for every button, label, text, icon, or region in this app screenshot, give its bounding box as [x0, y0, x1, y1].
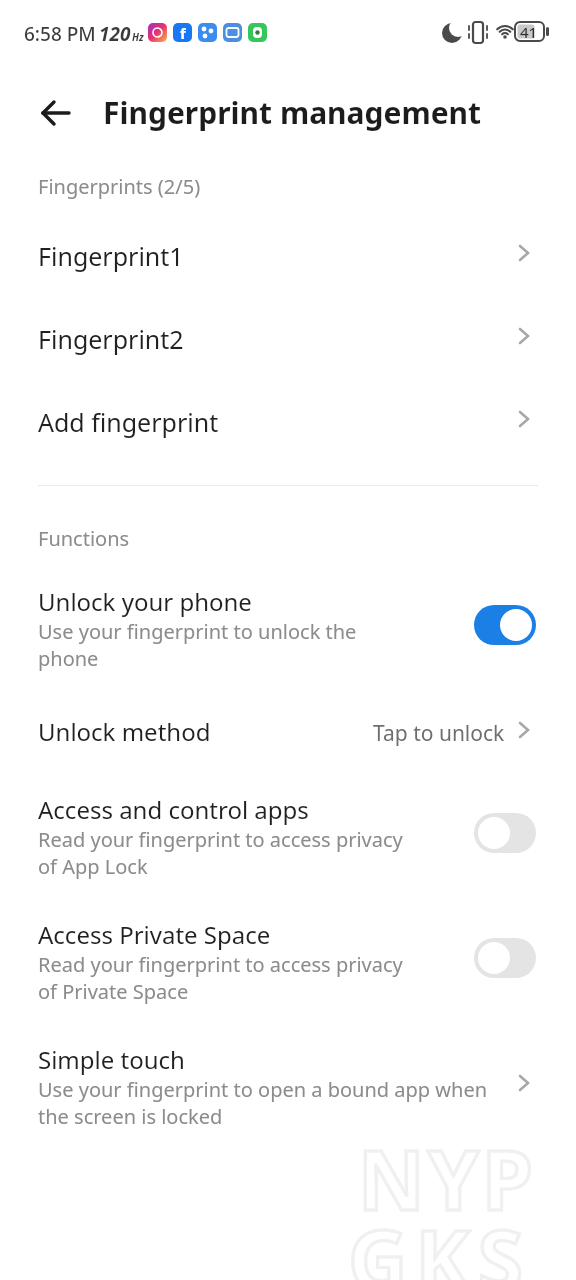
staticText: Fingerprint2	[38, 322, 184, 356]
staticText: Use your fingerprint to open a bound app…	[38, 1076, 488, 1130]
button[interactable]	[474, 605, 536, 645]
staticText: Add fingerprint	[38, 405, 219, 439]
staticText: 6:58 PM	[24, 21, 96, 47]
staticText: Tap to unlock	[373, 719, 505, 748]
button[interactable]: Fingerprint2	[0, 296, 576, 376]
button[interactable]: Access and control apps	[0, 778, 576, 893]
staticText: Hz	[132, 30, 144, 44]
staticText: Unlock your phone	[38, 585, 252, 618]
staticText: Fingerprints (2/5)	[38, 173, 201, 200]
staticText: Read your fingerprint to access privacy …	[38, 826, 403, 880]
staticText: Fingerprint1	[38, 239, 184, 273]
staticText: Fingerprint management	[103, 92, 482, 133]
staticText: NYP	[358, 1122, 536, 1234]
button[interactable]	[474, 938, 536, 978]
staticText: GKS	[348, 1202, 531, 1280]
staticText: Simple touch	[38, 1043, 185, 1076]
staticText: f	[180, 23, 186, 42]
button[interactable]: Add fingerprint	[0, 379, 576, 459]
button[interactable]: Unlock your phone	[0, 570, 576, 685]
staticText: 120	[99, 21, 131, 47]
button[interactable]: Fingerprint1	[0, 213, 576, 293]
button[interactable]	[36, 94, 76, 132]
staticText: 41	[520, 22, 538, 42]
button[interactable]: Unlock method	[0, 695, 576, 765]
staticText: Access Private Space	[38, 918, 271, 951]
button[interactable]: Simple touch	[0, 1028, 576, 1143]
button[interactable]	[474, 813, 536, 853]
button[interactable]: Access Private Space	[0, 903, 576, 1018]
staticText: Access and control apps	[38, 793, 309, 826]
staticText: Unlock method	[38, 715, 211, 748]
staticText: Functions	[38, 525, 130, 552]
staticText: Use your fingerprint to unlock the phone	[38, 618, 357, 672]
staticText: Read your fingerprint to access privacy …	[38, 951, 403, 1005]
